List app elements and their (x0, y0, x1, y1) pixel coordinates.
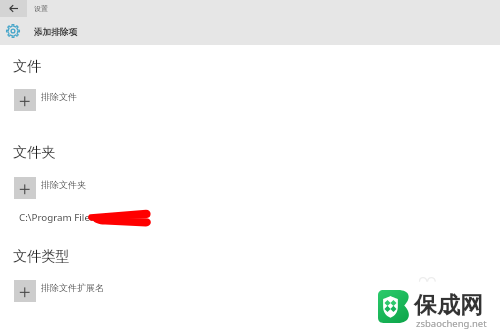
staticText: 设置 (34, 4, 48, 13)
staticText: 文件夹 (13, 143, 56, 161)
staticText: 排除文件 (41, 91, 77, 102)
staticText: 保成网 (414, 291, 483, 320)
staticText: 文件 (13, 57, 42, 75)
button[interactable]: Back (0, 0, 27, 17)
staticText: 文件类型 (13, 247, 70, 265)
button[interactable]: Add 排除文件扩展名 (14, 280, 36, 302)
button[interactable]: Add 排除文件 (14, 89, 36, 111)
staticText: zsbaocheng.net (416, 317, 487, 330)
button[interactable]: Add 排除文件夹 (14, 177, 36, 199)
staticText: C:\Program Files\ (19, 211, 99, 224)
staticText: 排除文件夹 (41, 179, 86, 190)
staticText: 添加排除项 (34, 27, 77, 38)
staticText: 排除文件扩展名 (41, 282, 104, 293)
